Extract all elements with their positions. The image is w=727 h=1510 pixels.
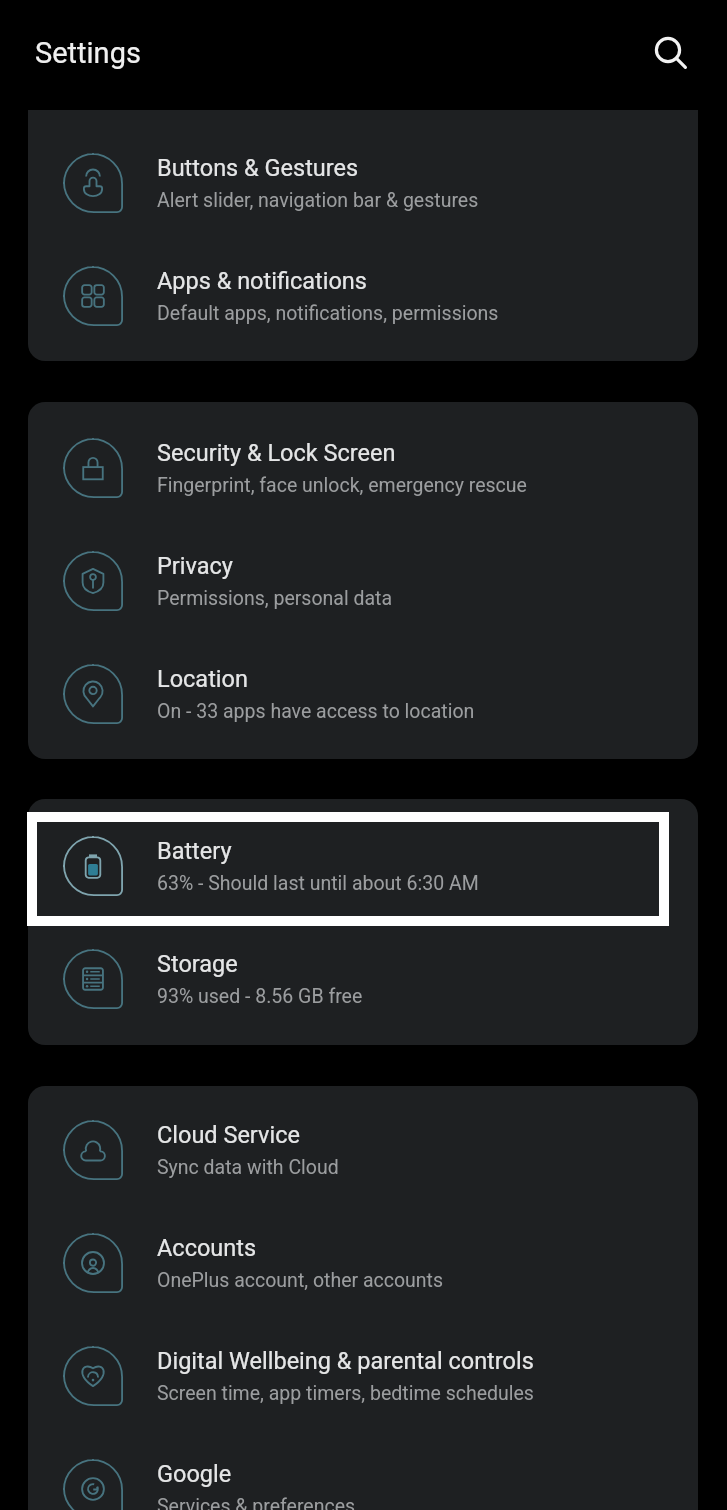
staticText: Settings [35, 36, 141, 70]
staticText: Default apps, notifications, permissions [157, 302, 499, 325]
button[interactable]: Google [28, 1432, 698, 1510]
staticText: Apps & notifications [157, 267, 367, 295]
staticText: Security & Lock Screen [157, 439, 396, 467]
button[interactable]: Search [634, 16, 702, 84]
staticText: OnePlus account, other accounts [157, 1269, 444, 1292]
button[interactable]: Privacy [28, 524, 698, 637]
staticText: Battery [157, 837, 232, 865]
button[interactable]: Buttons & Gestures [28, 126, 698, 239]
staticText: Permissions, personal data [157, 587, 393, 610]
staticText: Location [157, 665, 248, 693]
staticText: On - 33 apps have access to location [157, 700, 475, 723]
staticText: 93% used - 8.56 GB free [157, 985, 363, 1008]
staticText: Buttons & Gestures [157, 154, 359, 182]
button[interactable]: Storage [28, 922, 698, 1035]
staticText: Storage [157, 950, 238, 978]
button[interactable]: Apps & notifications [28, 239, 698, 352]
staticText: Google [157, 1460, 232, 1488]
staticText: Sync data with Cloud [157, 1156, 339, 1179]
button[interactable]: Accounts [28, 1206, 698, 1319]
button[interactable]: Digital Wellbeing & parental controls [28, 1319, 698, 1432]
button[interactable]: Security & Lock Screen [28, 411, 698, 524]
button[interactable]: Cloud Service [28, 1093, 698, 1206]
staticText: Fingerprint, face unlock, emergency resc… [157, 474, 527, 497]
staticText: 63% - Should last until about 6:30 AM [157, 872, 479, 895]
staticText: Digital Wellbeing & parental controls [157, 1347, 534, 1375]
staticText: Alert slider, navigation bar & gestures [157, 189, 479, 212]
button[interactable]: Battery [28, 809, 698, 922]
staticText: Privacy [157, 552, 233, 580]
button[interactable]: Location [28, 637, 698, 750]
staticText: Accounts [157, 1234, 257, 1262]
staticText: Cloud Service [157, 1121, 300, 1149]
staticText: Services & preferences [157, 1495, 356, 1510]
staticText: Screen time, app timers, bedtime schedul… [157, 1382, 534, 1405]
